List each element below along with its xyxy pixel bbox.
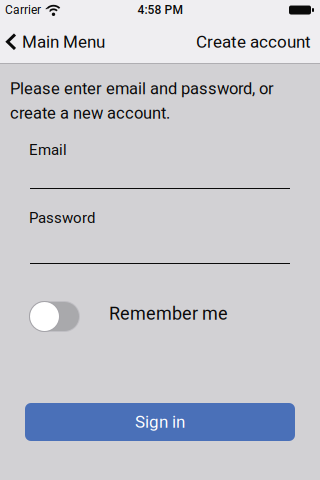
staticText: Carrier <box>5 3 41 17</box>
staticText: Password <box>29 209 95 227</box>
button[interactable]: Main Menu <box>6 20 105 64</box>
button[interactable]: Remember me <box>29 301 80 332</box>
staticText: Sign in <box>135 412 185 432</box>
staticText: Email <box>29 141 67 159</box>
staticText: 4:58 PM <box>137 3 182 17</box>
button[interactable]: Sign in <box>25 403 295 441</box>
staticText: Please enter email and password, or crea… <box>10 79 274 123</box>
staticText: Main Menu <box>22 32 105 52</box>
button[interactable]: Create account <box>181 20 311 64</box>
staticText: Remember me <box>109 303 228 324</box>
staticText: Create account <box>196 32 311 52</box>
